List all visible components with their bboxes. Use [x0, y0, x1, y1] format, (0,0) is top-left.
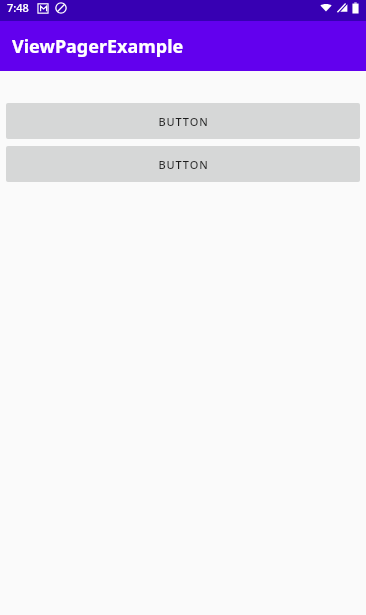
staticText: 7:48 — [7, 0, 29, 15]
staticText: ViewPagerExample — [12, 34, 184, 59]
staticText: BUTTON — [158, 114, 209, 129]
button[interactable]: BUTTON — [6, 146, 360, 182]
staticText: BUTTON — [158, 157, 209, 172]
button[interactable]: BUTTON — [6, 103, 360, 139]
